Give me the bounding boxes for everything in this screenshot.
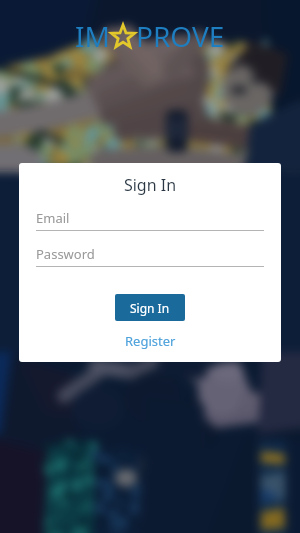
staticText: Email [36, 209, 70, 227]
staticText: Register [125, 332, 176, 350]
button[interactable]: Sign In [115, 294, 185, 321]
staticText: IM [75, 17, 110, 55]
staticText: Sign In [130, 300, 170, 316]
staticText: PROVE [136, 17, 225, 55]
staticText: Password [36, 245, 95, 263]
button[interactable]: Register [115, 329, 186, 353]
staticText: Sign In [19, 174, 281, 196]
